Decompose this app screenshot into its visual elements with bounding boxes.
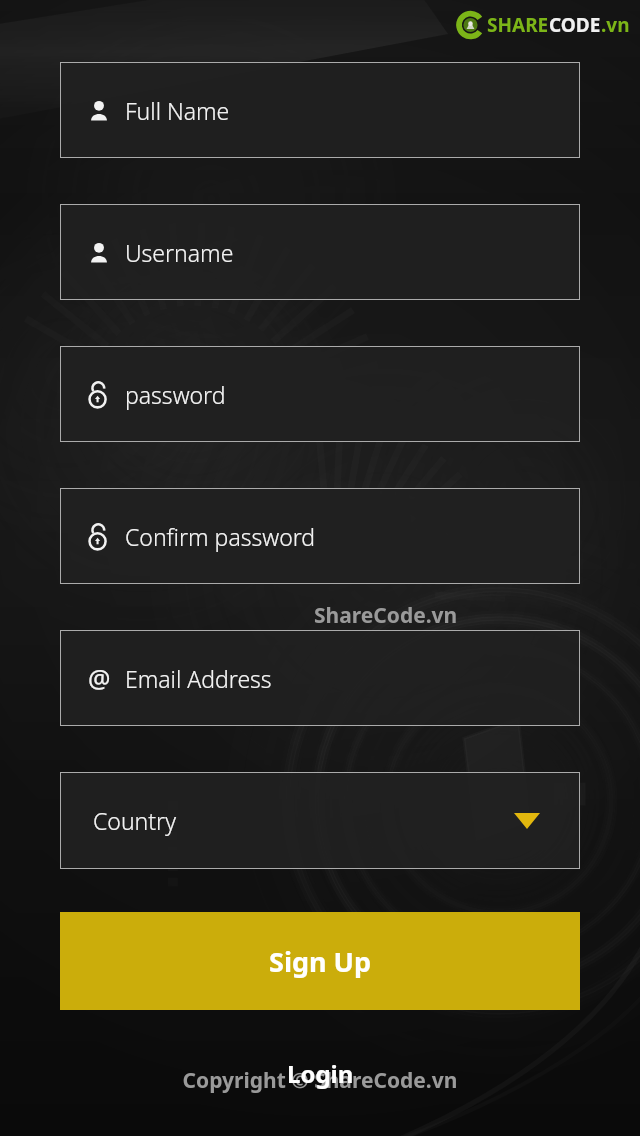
staticText: @ bbox=[88, 661, 111, 695]
staticText: Full Name bbox=[125, 95, 230, 126]
button[interactable]: Login bbox=[277, 1053, 364, 1094]
staticText: ShareCode.vn bbox=[314, 601, 458, 630]
button[interactable]: Full Name bbox=[60, 62, 580, 158]
button[interactable]: Confirm password bbox=[60, 488, 580, 584]
staticText: password bbox=[125, 379, 226, 410]
staticText: Login bbox=[287, 1057, 354, 1090]
button[interactable]: Username bbox=[60, 204, 580, 300]
staticText: Confirm password bbox=[125, 521, 316, 552]
staticText: Country bbox=[93, 805, 176, 836]
staticText: Email Address bbox=[125, 663, 272, 694]
button[interactable]: Country bbox=[60, 772, 580, 869]
staticText: Sign Up bbox=[269, 943, 372, 980]
staticText: Copyright © ShareCode.vn bbox=[0, 1066, 640, 1095]
staticText: .vn bbox=[601, 12, 630, 38]
staticText: Username bbox=[125, 237, 234, 268]
button[interactable]: Sign Up bbox=[60, 912, 580, 1010]
button[interactable]: @ bbox=[60, 630, 580, 726]
staticText: CODE bbox=[549, 12, 601, 38]
button[interactable]: password bbox=[60, 346, 580, 442]
staticText: SHARE bbox=[487, 12, 549, 38]
